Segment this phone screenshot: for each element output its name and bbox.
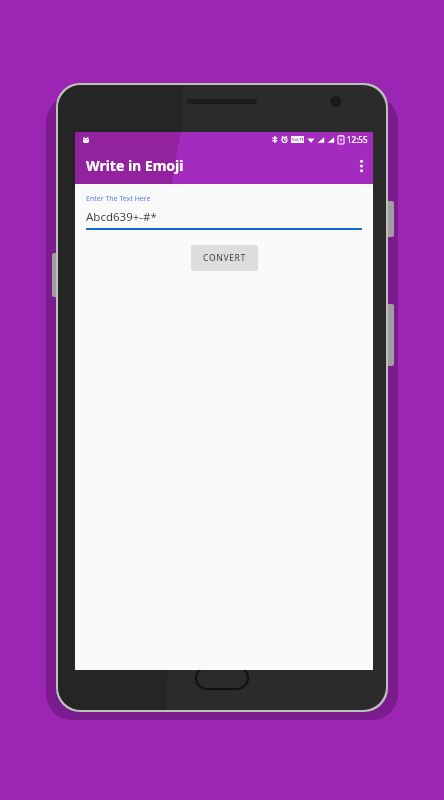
staticText: CONVERT <box>203 252 246 264</box>
staticText: 12:55 <box>347 134 368 145</box>
button[interactable]: More options <box>350 151 373 181</box>
staticText: Enter The Text Here <box>86 194 151 204</box>
staticText: VoLTE <box>292 137 304 142</box>
staticText: Write in Emoji <box>86 156 184 175</box>
button[interactable]: CONVERT <box>191 245 258 271</box>
staticText: Abcd639+-#* <box>86 209 157 225</box>
